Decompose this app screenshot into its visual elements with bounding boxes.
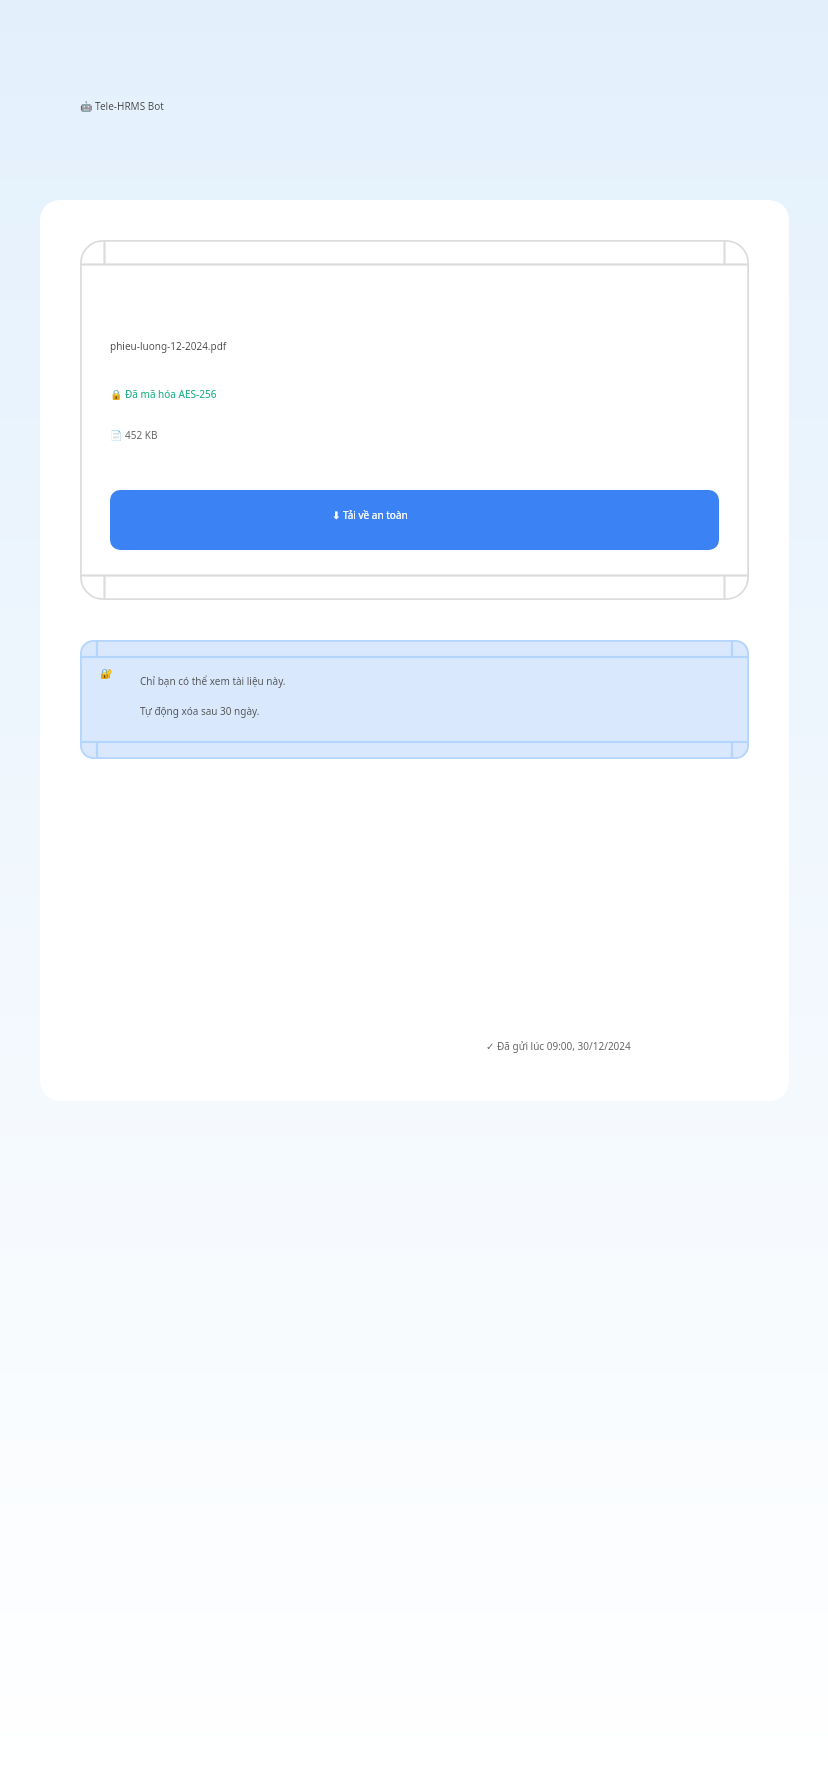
staticText: ✓ Đã gửi lúc 09:00, 30/12/2024 [486, 1039, 631, 1053]
staticText: Chỉ bạn có thể xem tài liệu này. [140, 674, 286, 688]
staticText: 🔐 [80, 640, 93, 652]
button[interactable]: phieu-luong-12-2024.pdf [80, 240, 749, 600]
staticText: 🤖 Tele-HRMS Bot [80, 99, 164, 113]
staticText: 🔒 Đã mã hóa AES-256 [110, 387, 217, 401]
button[interactable]: 🤖 Tele-HRMS Bot [80, 99, 164, 113]
staticText: phieu-luong-12-2024.pdf [110, 339, 227, 353]
staticText: ⬇️ Tải về an toàn [332, 508, 408, 522]
staticText: 📄 452 KB [110, 428, 158, 442]
staticText: Tự động xóa sau 30 ngày. [140, 704, 260, 718]
button[interactable]: ⬇️ Tải về an toàn [110, 490, 719, 550]
